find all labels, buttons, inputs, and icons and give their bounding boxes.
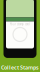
staticText: Your stamp card	[10, 22, 30, 26]
staticText: Collect Stamps	[1, 64, 39, 71]
